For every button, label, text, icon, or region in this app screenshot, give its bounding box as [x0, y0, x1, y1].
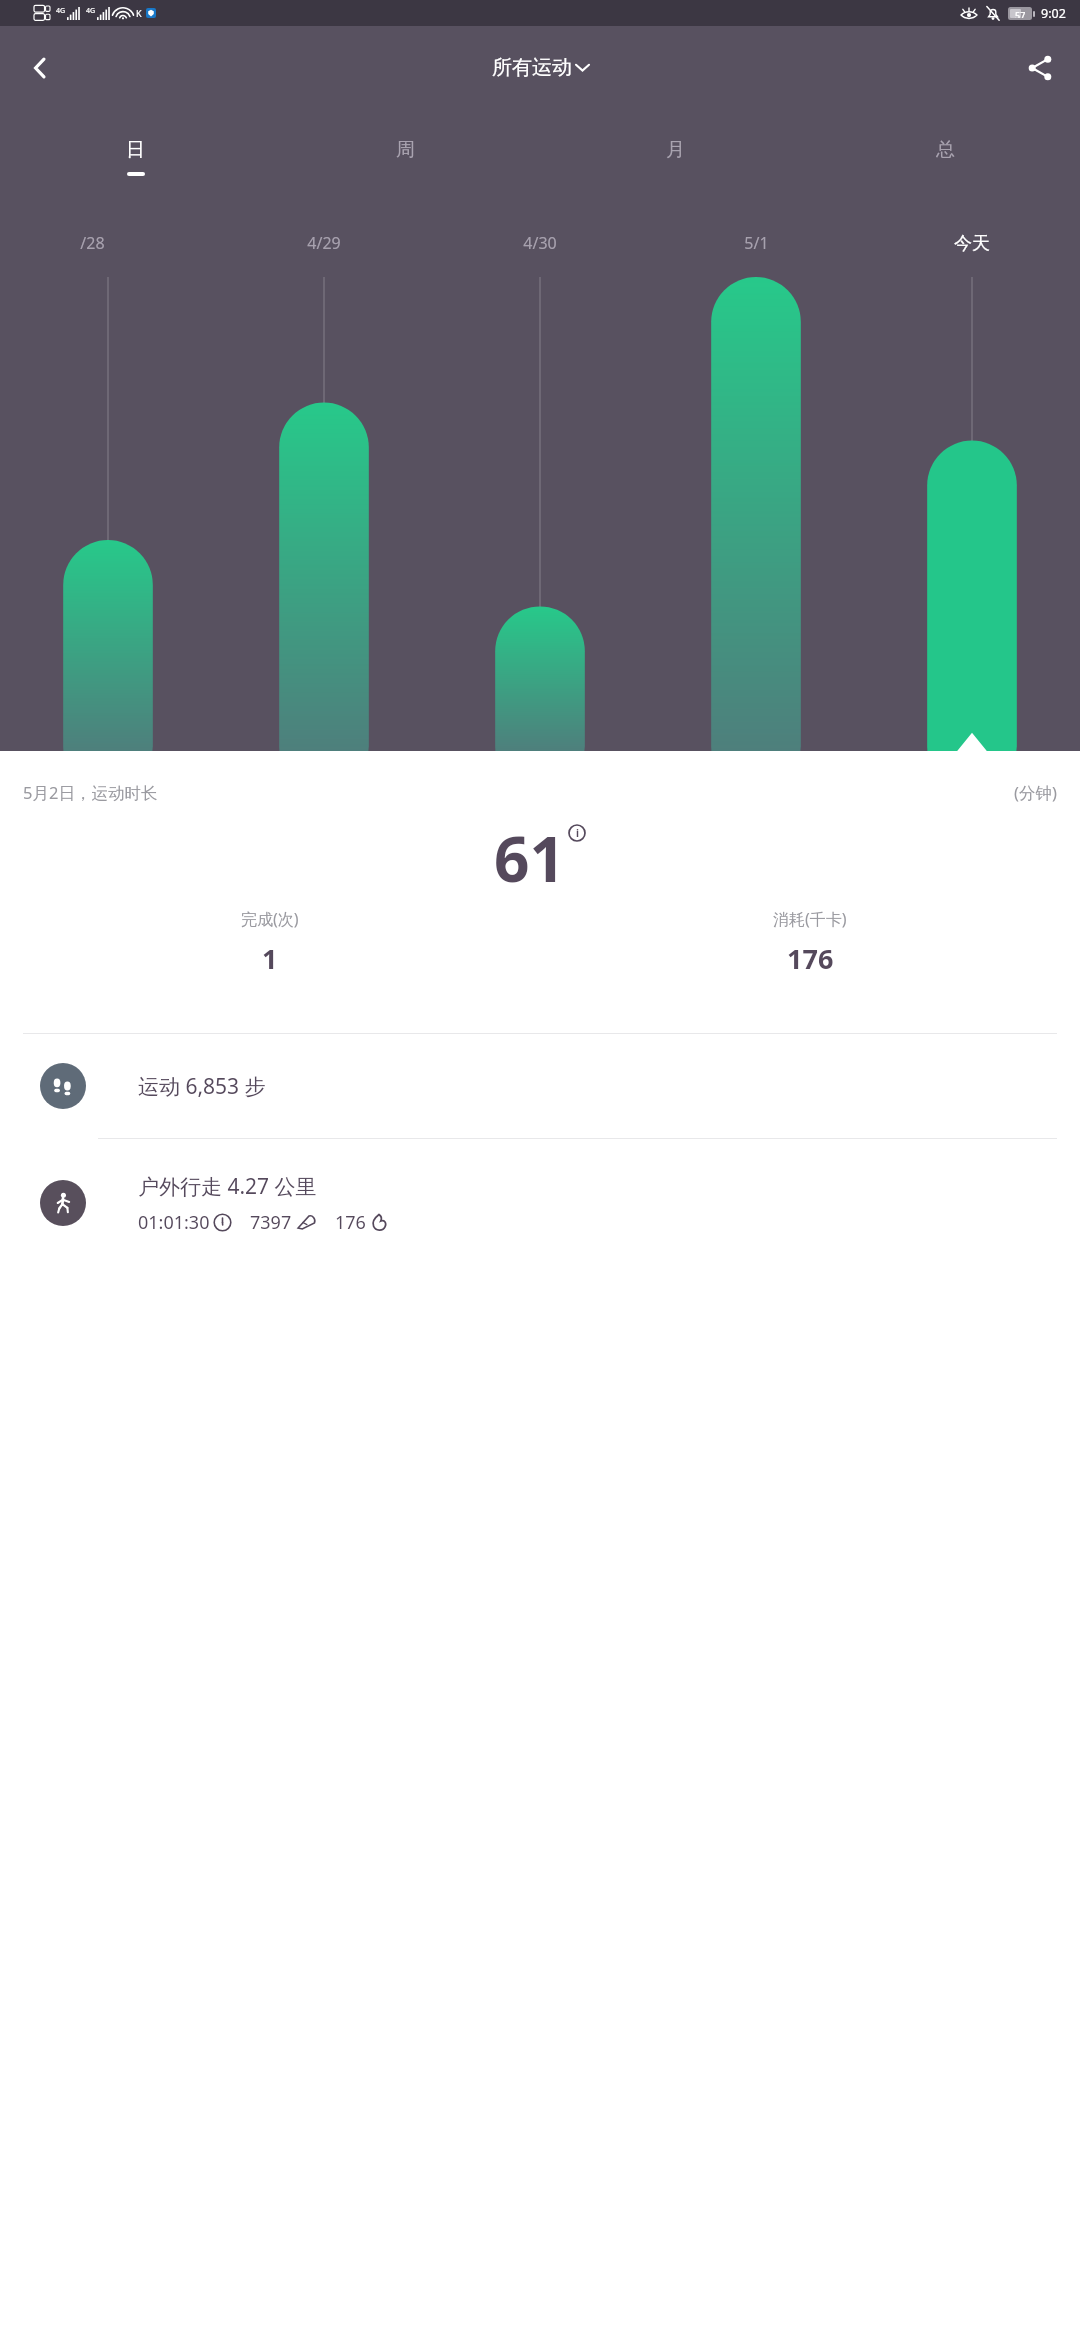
staticText: 176 — [787, 940, 834, 977]
staticText: 户外行走 4.27 公里 — [138, 1172, 317, 1201]
staticText: 总 — [936, 138, 955, 162]
staticText: K — [136, 7, 142, 19]
staticText: 61 — [494, 816, 565, 900]
staticText: 消耗(千卡) — [773, 908, 847, 930]
staticText: (分钟) — [1014, 781, 1057, 804]
button[interactable]: 消耗(千卡) — [540, 908, 1080, 977]
staticText: 今天 — [954, 232, 990, 255]
staticText: 4/29 — [307, 232, 341, 254]
staticText: 01:01:30 — [138, 1210, 210, 1235]
staticText: 月 — [666, 138, 685, 162]
staticText: 周 — [396, 138, 415, 162]
button[interactable]: Back — [14, 42, 66, 94]
staticText: 完成(次) — [241, 908, 299, 930]
button[interactable]: Info — [568, 824, 586, 842]
staticText: 4G — [56, 6, 66, 16]
button[interactable]: Share — [1014, 42, 1066, 94]
button[interactable]: 运动 6,853 步 — [0, 1034, 1080, 1138]
staticText: 5月2日，运动时长 — [23, 781, 158, 804]
staticText: 7397 — [250, 1210, 292, 1235]
staticText: /28 — [80, 232, 105, 254]
staticText: 176 — [335, 1210, 366, 1235]
staticText: 57 — [1015, 9, 1026, 18]
staticText: i — [576, 826, 579, 840]
button[interactable]: 所有运动 — [492, 55, 589, 80]
button[interactable]: 户外行走 4.27 公里 — [0, 1139, 1080, 1267]
button[interactable]: 日 — [0, 109, 270, 205]
staticText: 4/30 — [523, 232, 557, 254]
staticText: 所有运动 — [492, 55, 572, 80]
staticText: 5/1 — [744, 232, 769, 254]
button[interactable]: 月 — [540, 109, 810, 205]
button[interactable]: 周 — [270, 109, 540, 205]
button[interactable]: 完成(次) — [0, 908, 540, 977]
staticText: 9:02 — [1041, 5, 1066, 22]
staticText: 日 — [126, 138, 145, 162]
staticText: 1 — [262, 940, 278, 977]
staticText: 运动 6,853 步 — [138, 1072, 266, 1101]
staticText: 4G — [86, 6, 96, 16]
button[interactable]: 总 — [810, 109, 1080, 205]
